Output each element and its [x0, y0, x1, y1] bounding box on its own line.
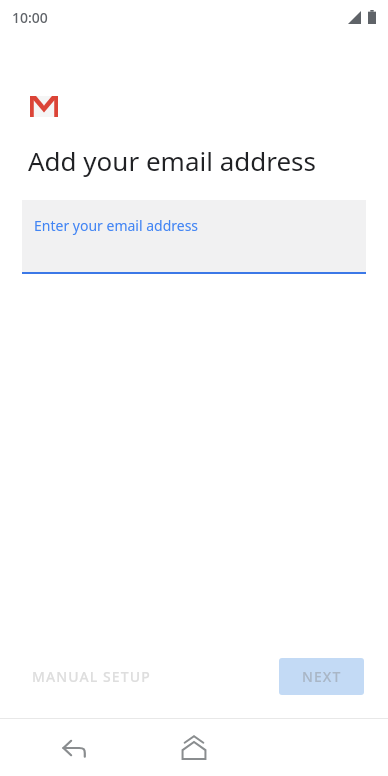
button[interactable]: Back	[52, 726, 96, 770]
staticText: NEXT	[302, 667, 342, 686]
button[interactable]: NEXT	[279, 658, 364, 695]
staticText: MANUAL SETUP	[32, 667, 151, 686]
staticText: Add your email address	[28, 143, 317, 178]
button[interactable]: Home	[172, 726, 216, 770]
button[interactable]: Enter your email address	[22, 200, 366, 274]
button[interactable]: MANUAL SETUP	[24, 657, 159, 696]
staticText: Enter your email address	[34, 216, 199, 235]
staticText: 10:00	[12, 8, 48, 27]
